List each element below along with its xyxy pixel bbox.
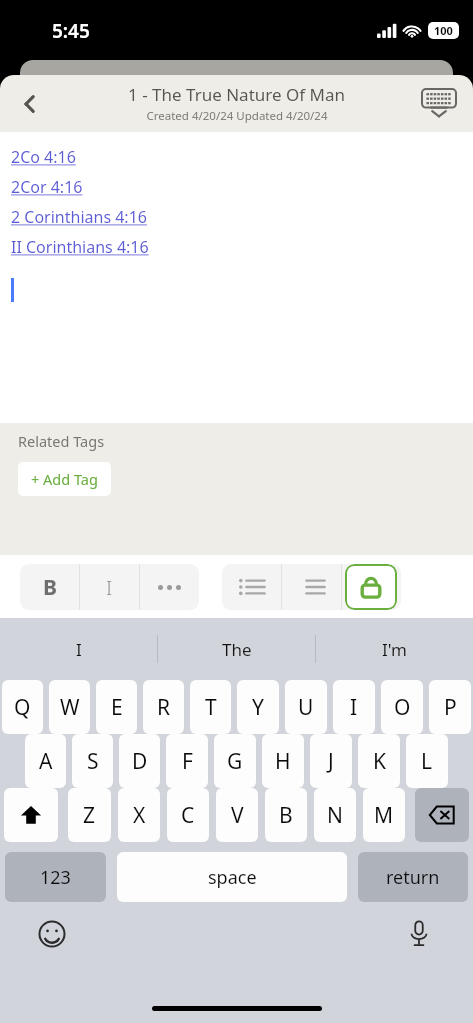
staticText: Created 4/20/24 Updated 4/20/24 [146,108,328,124]
staticText: 1 - The True Nature Of Man [128,83,345,106]
staticText: B [279,801,293,830]
staticText: The [222,638,252,661]
staticText: I'm [382,638,407,661]
staticText: 2Co 4:16 [11,146,76,168]
staticText: 123 [40,865,71,890]
button[interactable]: II Corinthians 4:16 [11,236,149,258]
button[interactable]: X [118,788,160,842]
staticText: O [394,693,411,722]
button[interactable]: Lock note [345,564,397,610]
staticText: 2 Corinthians 4:16 [11,206,147,228]
staticText: U [298,693,314,722]
staticText: T [205,693,217,722]
button[interactable]: H [262,734,304,788]
button[interactable]: K [358,734,400,788]
button[interactable]: A [25,734,66,788]
button[interactable]: Q [2,680,43,734]
button[interactable]: G [214,734,256,788]
button[interactable]: Y [237,680,279,734]
staticText: Q [14,693,31,722]
button[interactable]: 2Co 4:16 [11,146,76,168]
button[interactable]: N [314,788,356,842]
staticText: G [227,747,243,776]
button[interactable]: D [119,734,160,788]
staticText: F [182,747,193,776]
staticText: J [328,747,334,776]
staticText: B [43,573,57,602]
staticText: V [231,801,244,830]
button[interactable]: The [158,618,315,680]
button[interactable]: R [143,680,184,734]
staticText: E [111,693,123,722]
button[interactable]: Checklist [342,564,401,610]
button[interactable]: I [0,618,157,680]
staticText: Y [252,693,264,722]
staticText: N [327,801,343,830]
staticText: II Corinthians 4:16 [11,236,149,258]
staticText: I [106,574,113,601]
staticText: C [181,801,195,830]
button[interactable]: W [49,680,90,734]
staticText: I [76,638,82,661]
button[interactable]: Italic [80,564,139,610]
button[interactable]: S [72,734,113,788]
button[interactable]: U [285,680,327,734]
button[interactable]: Bold [20,564,79,610]
button[interactable]: L [406,734,448,788]
staticText: A [39,747,53,776]
button[interactable]: Hide keyboard [417,82,461,126]
staticText: S [87,747,99,776]
staticText: D [132,747,148,776]
button[interactable]: Back [10,84,50,124]
button[interactable]: F [166,734,208,788]
button[interactable]: 123 [5,852,106,902]
button[interactable]: B [265,788,307,842]
button[interactable]: Emoji [34,916,70,952]
button[interactable]: J [310,734,352,788]
staticText: 5:45 [52,18,90,44]
button[interactable]: Shift [4,788,58,842]
button[interactable]: space [117,852,347,902]
button[interactable]: V [216,788,258,842]
staticText: I [350,693,358,722]
staticText: Related Tags [18,431,105,451]
staticText: M [374,801,394,830]
staticText: H [275,747,291,776]
button[interactable]: Dictation [401,916,437,952]
staticText: space [208,865,257,890]
staticText: Z [83,801,96,830]
button[interactable]: E [96,680,137,734]
staticText: + Add Tag [31,469,98,489]
staticText: X [133,801,146,830]
staticText: R [157,693,171,722]
staticText: W [60,693,80,722]
button[interactable]: + Add Tag [18,462,111,496]
button[interactable]: Numbered list [282,564,341,610]
button[interactable]: 2 Corinthians 4:16 [11,206,147,228]
staticText: P [444,693,457,722]
button[interactable]: Bulleted list [222,564,281,610]
button[interactable]: P [429,680,471,734]
button[interactable]: O [381,680,423,734]
button[interactable]: Z [68,788,111,842]
staticText: K [373,747,386,776]
staticText: 2Cor 4:16 [11,176,83,198]
staticText: L [421,747,433,776]
button[interactable]: return [358,852,468,902]
staticText: return [386,865,440,890]
button[interactable]: M [363,788,405,842]
button[interactable]: 2Cor 4:16 [11,176,83,198]
button[interactable]: C [167,788,209,842]
button[interactable]: T [190,680,231,734]
button[interactable]: More [140,564,199,610]
button[interactable]: Backspace [415,788,469,842]
button[interactable]: I'm [316,618,473,680]
button[interactable]: I [333,680,375,734]
staticText: 100 [434,23,453,38]
